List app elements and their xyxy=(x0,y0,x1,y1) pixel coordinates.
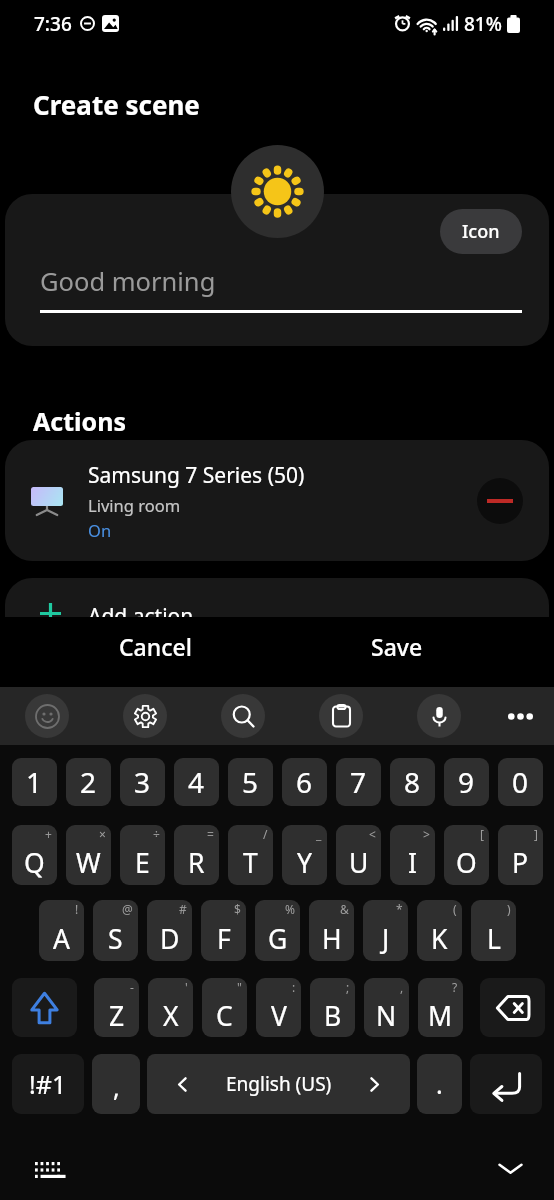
button[interactable]: Clipboard xyxy=(319,694,363,738)
button[interactable]: ) xyxy=(471,900,516,961)
button[interactable]: 1 xyxy=(12,758,57,806)
staticText: 2 xyxy=(80,763,97,801)
button[interactable]: ? xyxy=(418,978,463,1037)
staticText: " xyxy=(237,979,242,995)
staticText: J xyxy=(382,921,390,957)
staticText: : xyxy=(292,979,296,995)
button[interactable]: Search xyxy=(221,694,265,738)
staticText: _ xyxy=(316,826,322,842)
staticText: ) xyxy=(507,901,511,917)
staticText: P xyxy=(512,845,529,881)
button[interactable]: 4 xyxy=(174,758,219,806)
staticText: Cancel xyxy=(119,631,192,662)
staticText: Add action xyxy=(88,602,194,631)
button[interactable]: " xyxy=(202,978,247,1037)
button[interactable]: ' xyxy=(148,978,193,1037)
button[interactable]: 9 xyxy=(444,758,489,806)
button[interactable]: English (US) xyxy=(147,1054,410,1114)
button[interactable]: % xyxy=(255,900,300,961)
staticText: , xyxy=(113,1070,120,1104)
button[interactable]: Keyboard layout xyxy=(30,1153,64,1187)
button[interactable]: Shift xyxy=(12,978,77,1037)
button[interactable]: 6 xyxy=(282,758,327,806)
staticText: Samsung 7 Series (50) xyxy=(88,461,305,490)
button[interactable]: # xyxy=(147,900,192,961)
button[interactable]: & xyxy=(309,900,354,961)
staticText: On xyxy=(88,519,112,541)
button[interactable]: Remove action xyxy=(477,478,523,524)
staticText: ' xyxy=(185,979,188,995)
staticText: Good morning xyxy=(40,264,216,299)
button[interactable]: 3 xyxy=(120,758,165,806)
staticText: H xyxy=(322,921,342,957)
button[interactable]: Samsung 7 Series (50) xyxy=(5,440,549,561)
button[interactable]: More options xyxy=(498,694,542,738)
button[interactable]: = xyxy=(174,825,219,885)
button[interactable]: 8 xyxy=(390,758,435,806)
button[interactable]: Icon xyxy=(440,209,522,254)
staticText: Icon xyxy=(462,219,500,244)
button[interactable]: + xyxy=(12,825,57,885)
staticText: , xyxy=(400,979,404,995)
button[interactable]: $ xyxy=(201,900,246,961)
button[interactable]: Cancel xyxy=(76,617,235,687)
staticText: ( xyxy=(453,901,457,917)
button[interactable]: ! xyxy=(39,900,84,961)
staticText: X xyxy=(163,998,179,1034)
button[interactable]: Settings xyxy=(123,694,167,738)
button[interactable]: _ xyxy=(282,825,327,885)
button[interactable]: [ xyxy=(444,825,489,885)
staticText: ÷ xyxy=(153,826,160,842)
staticText: G xyxy=(268,921,288,957)
button[interactable]: < xyxy=(336,825,381,885)
staticText: !#1 xyxy=(29,1067,67,1101)
staticText: # xyxy=(179,901,187,917)
button[interactable]: 7 xyxy=(336,758,381,806)
button[interactable]: Enter xyxy=(470,1054,542,1114)
staticText: W xyxy=(76,845,101,881)
staticText: V xyxy=(271,998,287,1034)
button[interactable]: @ xyxy=(93,900,138,961)
staticText: E xyxy=(135,845,150,881)
staticText: ; xyxy=(346,979,350,995)
button[interactable]: ; xyxy=(310,978,355,1037)
button[interactable]: : xyxy=(256,978,301,1037)
button[interactable]: 0 xyxy=(498,758,543,806)
staticText: 3 xyxy=(134,763,151,801)
button[interactable]: 5 xyxy=(228,758,273,806)
button[interactable]: !#1 xyxy=(12,1054,84,1114)
button[interactable]: ÷ xyxy=(120,825,165,885)
staticText: * xyxy=(396,901,403,917)
staticText: Living room xyxy=(88,494,181,516)
button[interactable]: Backspace xyxy=(480,978,545,1037)
staticText: + xyxy=(45,826,52,842)
button[interactable]: ( xyxy=(417,900,462,961)
staticText: Z xyxy=(109,998,125,1034)
button[interactable]: / xyxy=(228,825,273,885)
staticText: ! xyxy=(75,901,79,917)
staticText: N xyxy=(376,998,397,1034)
button[interactable]: Voice input xyxy=(417,694,461,738)
button[interactable]: Save xyxy=(320,617,474,687)
staticText: Q xyxy=(24,845,45,881)
staticText: T xyxy=(243,845,258,881)
button[interactable]: . xyxy=(417,1054,462,1114)
staticText: F xyxy=(217,921,231,957)
button[interactable]: * xyxy=(363,900,408,961)
button[interactable]: × xyxy=(66,825,111,885)
button[interactable]: 2 xyxy=(66,758,111,806)
button[interactable]: , xyxy=(364,978,409,1037)
button[interactable]: , xyxy=(92,1054,140,1114)
staticText: O xyxy=(456,845,477,881)
button[interactable]: ] xyxy=(498,825,543,885)
staticText: 4 xyxy=(188,763,205,801)
button[interactable]: - xyxy=(94,978,139,1037)
button[interactable]: Emoji xyxy=(25,694,69,738)
button[interactable]: Add action xyxy=(5,578,549,658)
staticText: / xyxy=(263,826,268,842)
button[interactable]: > xyxy=(390,825,435,885)
staticText: < xyxy=(369,826,376,842)
staticText: 0 xyxy=(512,763,529,801)
button[interactable]: Scene icon xyxy=(231,145,324,238)
button[interactable]: Hide keyboard xyxy=(492,1150,529,1187)
